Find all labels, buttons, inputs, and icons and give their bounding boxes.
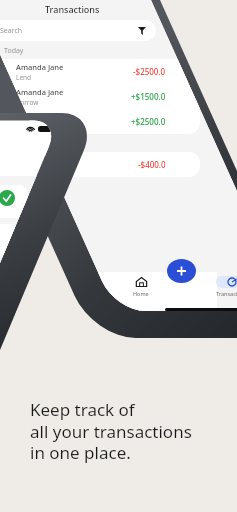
button[interactable]: Amanda Jane bbox=[0, 109, 200, 134]
staticText: Borrow bbox=[16, 98, 39, 107]
button[interactable]: Amanda Jane bbox=[0, 152, 200, 177]
button[interactable]: Transactions bbox=[212, 276, 237, 297]
staticText: +$1500.0 bbox=[131, 91, 166, 102]
staticText: Transactions bbox=[45, 3, 100, 15]
button[interactable]: Add transaction bbox=[166, 257, 198, 285]
staticText: Amanda Jane bbox=[16, 112, 64, 122]
staticText: Keep track of all your transactions in o… bbox=[30, 398, 192, 464]
staticText: Today bbox=[4, 46, 24, 56]
staticText: Home bbox=[133, 290, 149, 297]
button[interactable]: Search bbox=[0, 20, 156, 41]
staticText: -$2500.0 bbox=[133, 66, 166, 77]
staticText: Lend bbox=[16, 73, 32, 82]
staticText: Amanda Jane bbox=[16, 155, 64, 165]
button[interactable]: Amanda Jane bbox=[0, 59, 200, 84]
staticText: +$2500.0 bbox=[131, 116, 166, 127]
button[interactable]: Home bbox=[126, 276, 156, 297]
staticText: Search bbox=[0, 26, 23, 36]
staticText: Borrow bbox=[16, 123, 39, 132]
staticText: Amanda Jane bbox=[16, 87, 64, 97]
staticText: Amanda Jane bbox=[16, 62, 64, 72]
button[interactable]: Amanda Jane bbox=[0, 84, 200, 109]
staticText: Transactions bbox=[216, 290, 237, 297]
staticText: -$400.0 bbox=[138, 159, 166, 170]
